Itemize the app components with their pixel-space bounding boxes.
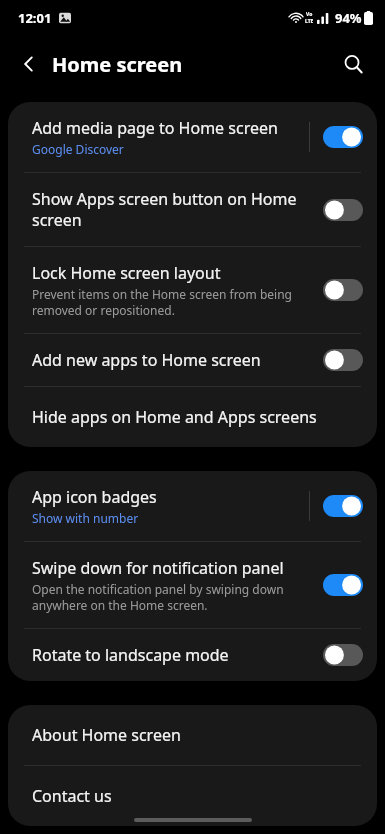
button[interactable]: About Home screen	[8, 705, 377, 765]
staticText: Open the notification panel by swiping d…	[32, 581, 313, 613]
staticText: About Home screen	[32, 724, 181, 746]
button[interactable]: Add media page to Home screen	[8, 102, 377, 172]
staticText: Add new apps to Home screen	[32, 349, 261, 371]
staticText: Contact us	[32, 785, 112, 807]
staticText: Add media page to Home screen	[32, 117, 278, 139]
staticText: Lock Home screen layout	[32, 262, 221, 284]
staticText: App icon badges	[32, 486, 157, 508]
staticText: Home screen	[52, 51, 183, 78]
button[interactable]: Toggle off	[323, 349, 363, 371]
staticText: Swipe down for notification panel	[32, 557, 284, 579]
staticText: Hide apps on Home and Apps screens	[32, 406, 317, 428]
button[interactable]: App icon badges	[8, 471, 377, 541]
button[interactable]: Contact us	[8, 766, 377, 826]
staticText: Show Apps screen button on Home screen	[32, 188, 313, 231]
button[interactable]: Toggle on	[323, 495, 363, 517]
button[interactable]: Lock Home screen layout	[8, 247, 377, 333]
staticText: Google Discover	[32, 141, 124, 157]
staticText: LTE	[305, 18, 314, 25]
button[interactable]: Toggle off	[323, 279, 363, 301]
staticText: 94%	[335, 9, 362, 27]
button[interactable]: Search	[332, 43, 374, 85]
button[interactable]: Add new apps to Home screen	[8, 334, 377, 386]
staticText: Rotate to landscape mode	[32, 644, 229, 666]
button[interactable]: Show Apps screen button on Home screen	[8, 173, 377, 246]
button[interactable]: Toggle on	[323, 574, 363, 596]
button[interactable]: Toggle off	[323, 199, 363, 221]
button[interactable]: Toggle off	[323, 644, 363, 666]
button[interactable]: Rotate to landscape mode	[8, 629, 377, 681]
button[interactable]: Toggle on	[323, 126, 363, 148]
staticText: Prevent items on the Home screen from be…	[32, 286, 313, 318]
staticText: 12:01	[18, 9, 52, 27]
staticText: Vo	[306, 11, 313, 18]
button[interactable]: Hide apps on Home and Apps screens	[8, 387, 377, 447]
button[interactable]: Swipe down for notification panel	[8, 542, 377, 628]
button[interactable]: Back	[8, 43, 50, 85]
staticText: Show with number	[32, 510, 139, 526]
